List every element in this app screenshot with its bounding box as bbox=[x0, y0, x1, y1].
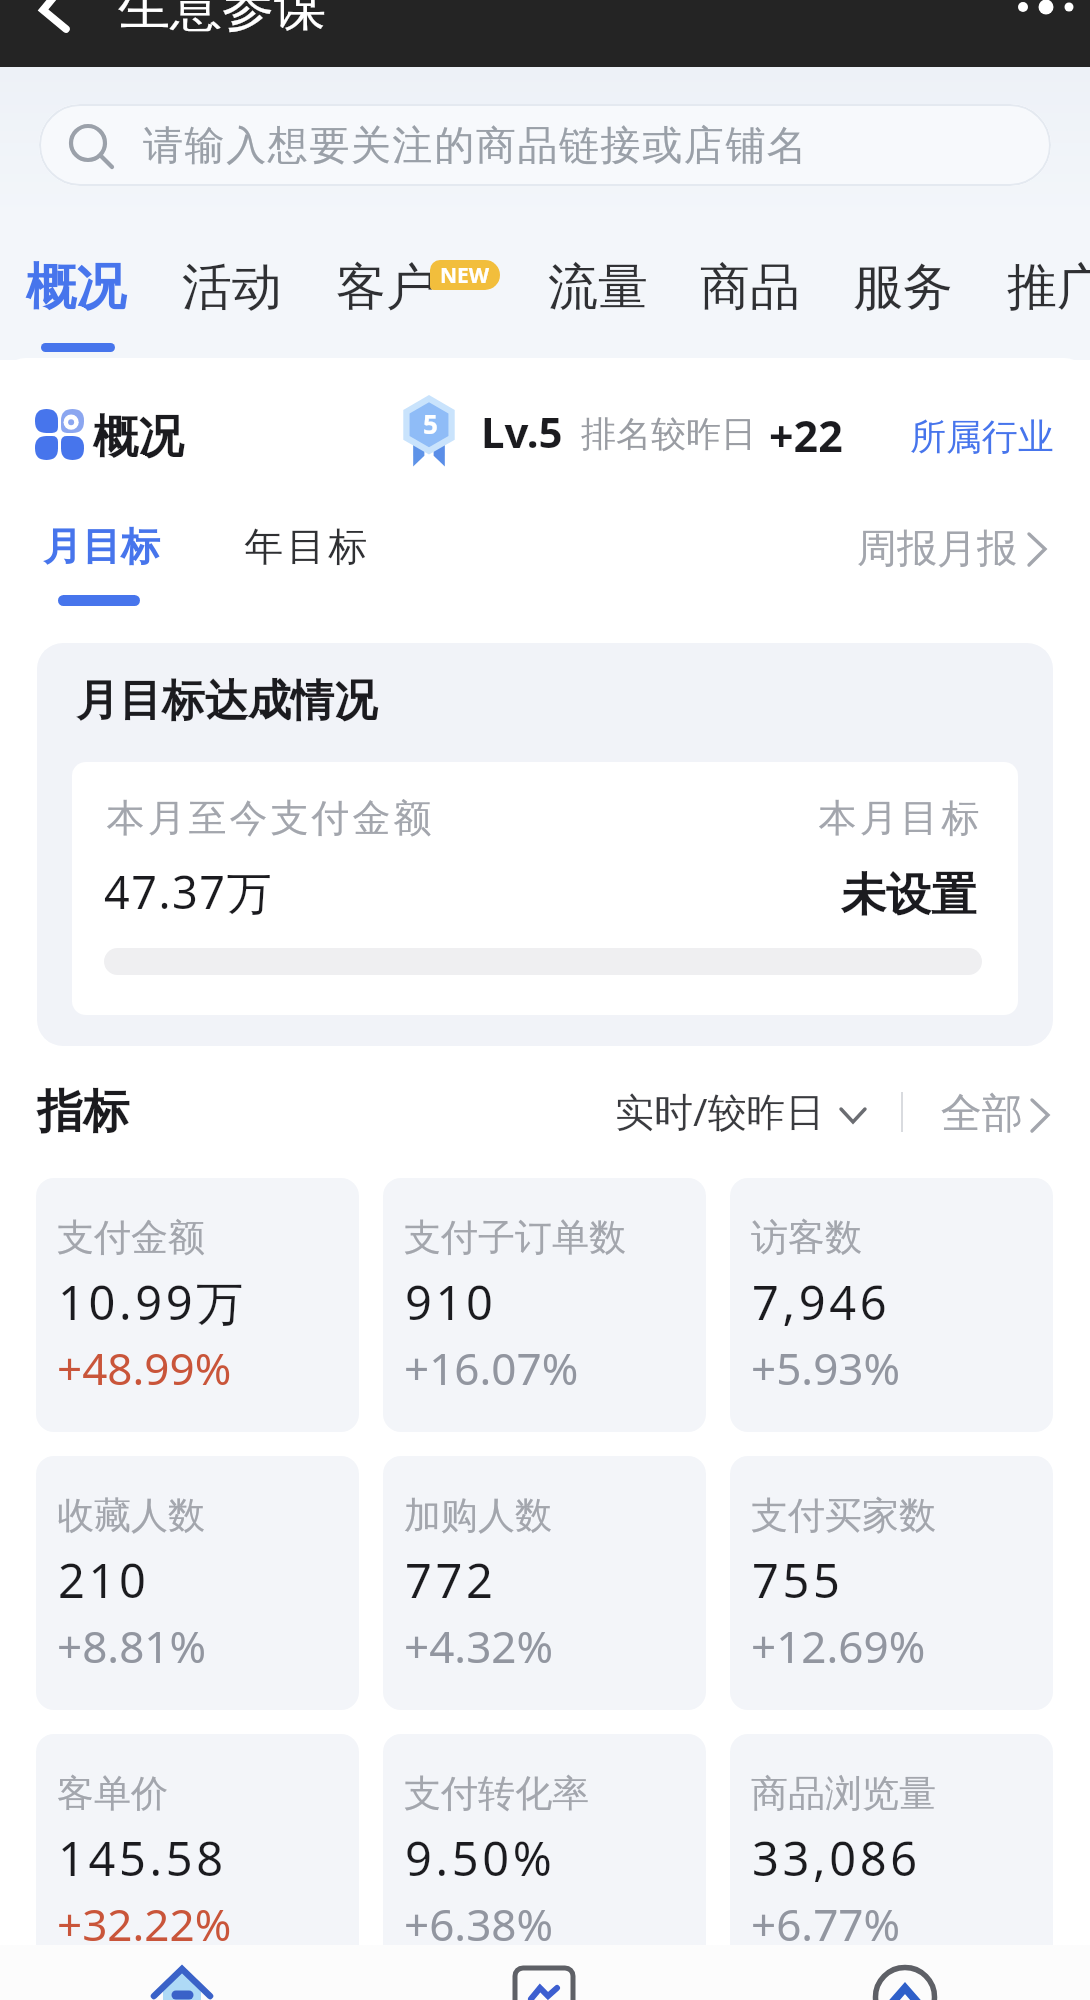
staticText: NEW bbox=[440, 261, 490, 290]
staticText: +32.22% bbox=[57, 1894, 232, 1954]
staticText: 客户 bbox=[336, 256, 436, 319]
button[interactable]: 实时/较昨日 bbox=[600, 1076, 880, 1148]
button[interactable]: 全部 bbox=[926, 1076, 1066, 1148]
button[interactable]: Profile bbox=[840, 1945, 970, 2000]
staticText: 周报月报 bbox=[857, 523, 1017, 573]
staticText: 推广 bbox=[1007, 256, 1090, 319]
button[interactable]: 年目标 bbox=[224, 512, 374, 582]
staticText: 活动 bbox=[182, 256, 282, 319]
staticText: 本月目标 bbox=[817, 794, 981, 842]
staticText: 流量 bbox=[548, 256, 648, 319]
staticText: 910 bbox=[405, 1270, 497, 1334]
staticText: 10.99万 bbox=[58, 1270, 247, 1334]
button[interactable]: 流量 bbox=[534, 220, 654, 350]
staticText: 支付子订单数 bbox=[404, 1214, 626, 1261]
staticText: 月目标 bbox=[43, 522, 160, 571]
staticText: 7,946 bbox=[752, 1270, 891, 1334]
staticText: 145.58 bbox=[58, 1826, 227, 1890]
staticText: 指标 bbox=[37, 1083, 129, 1141]
staticText: +5.93% bbox=[751, 1338, 901, 1398]
staticText: 生意参谋 bbox=[118, 0, 326, 40]
button[interactable]: 请输入想要关注的商品链接或店铺名 bbox=[39, 104, 1051, 186]
staticText: 概况 bbox=[93, 409, 183, 466]
staticText: 支付转化率 bbox=[404, 1770, 589, 1817]
staticText: 商品 bbox=[700, 256, 800, 319]
staticText: 支付买家数 bbox=[751, 1492, 936, 1539]
button[interactable]: 概况 bbox=[12, 220, 132, 350]
staticText: 加购人数 bbox=[404, 1492, 552, 1539]
button[interactable]: 支付买家数 bbox=[730, 1456, 1053, 1710]
staticText: +48.99% bbox=[57, 1338, 232, 1398]
staticText: 本月至今支付金额 bbox=[105, 794, 433, 842]
staticText: 访客数 bbox=[751, 1214, 862, 1261]
button[interactable]: Analytics bbox=[480, 1945, 610, 2000]
staticText: 支付金额 bbox=[57, 1214, 205, 1261]
button[interactable]: 商品浏览量 bbox=[730, 1734, 1053, 1988]
staticText: +4.32% bbox=[404, 1616, 554, 1676]
staticText: +16.07% bbox=[404, 1338, 579, 1398]
staticText: +8.81% bbox=[57, 1616, 207, 1676]
staticText: 210 bbox=[58, 1548, 150, 1612]
button[interactable]: 支付子订单数 bbox=[383, 1178, 706, 1432]
button[interactable]: 周报月报 bbox=[845, 512, 1065, 582]
staticText: 实时/较昨日 bbox=[615, 1084, 825, 1137]
button[interactable]: 支付金额 bbox=[36, 1178, 359, 1432]
staticText: 未设置 bbox=[841, 867, 976, 924]
staticText: 47.37万 bbox=[104, 861, 274, 922]
button[interactable]: 月目标达成情况 bbox=[37, 643, 1053, 1046]
staticText: 概况 bbox=[26, 256, 126, 319]
button[interactable]: 所属行业 bbox=[898, 400, 1064, 466]
staticText: 9.50% bbox=[405, 1826, 556, 1890]
staticText: 月目标达成情况 bbox=[76, 674, 377, 728]
staticText: 商品浏览量 bbox=[751, 1770, 936, 1817]
staticText: 服务 bbox=[853, 256, 953, 319]
staticText: 收藏人数 bbox=[57, 1492, 205, 1539]
staticText: +6.77% bbox=[751, 1894, 901, 1954]
staticText: 所属行业 bbox=[910, 414, 1054, 459]
button[interactable]: 收藏人数 bbox=[36, 1456, 359, 1710]
staticText: 客单价 bbox=[57, 1770, 168, 1817]
staticText: +12.69% bbox=[751, 1616, 926, 1676]
button[interactable]: 推广 bbox=[993, 220, 1090, 350]
staticText: 排名较昨日 bbox=[581, 412, 756, 456]
button[interactable]: 活动 bbox=[168, 220, 288, 350]
staticText: 年目标 bbox=[243, 522, 369, 571]
button[interactable]: Home bbox=[115, 1945, 250, 2000]
staticText: Lv.5 bbox=[481, 403, 563, 460]
button[interactable]: Back bbox=[0, 0, 90, 67]
staticText: 33,086 bbox=[752, 1826, 921, 1890]
button[interactable]: 客户 bbox=[322, 220, 442, 350]
staticText: 772 bbox=[405, 1548, 497, 1612]
staticText: 全部 bbox=[941, 1088, 1023, 1140]
staticText: 755 bbox=[752, 1548, 844, 1612]
button[interactable]: More options bbox=[960, 0, 1090, 50]
button[interactable]: 访客数 bbox=[730, 1178, 1053, 1432]
staticText: 5 bbox=[423, 406, 438, 441]
button[interactable]: 月目标 bbox=[28, 512, 178, 612]
button[interactable]: 商品 bbox=[686, 220, 806, 350]
staticText: +6.38% bbox=[404, 1894, 554, 1954]
staticText: 请输入想要关注的商品链接或店铺名 bbox=[143, 120, 809, 170]
button[interactable]: 支付转化率 bbox=[383, 1734, 706, 1988]
button[interactable]: 客单价 bbox=[36, 1734, 359, 1988]
button[interactable]: 加购人数 bbox=[383, 1456, 706, 1710]
staticText: +22 bbox=[769, 406, 843, 465]
button[interactable]: 服务 bbox=[839, 220, 959, 350]
